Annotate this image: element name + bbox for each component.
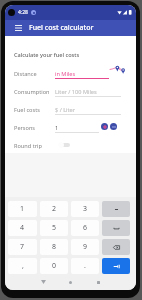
button[interactable]: 8 <box>40 239 68 255</box>
staticText: 1 <box>55 124 59 131</box>
staticText: Fuel cost calculator <box>29 23 94 33</box>
button[interactable]: Recent apps <box>91 275 105 289</box>
button[interactable]: Add person <box>101 123 108 130</box>
staticText: 3 <box>83 204 88 214</box>
button[interactable]: 5 <box>40 220 68 236</box>
staticText: 0 <box>52 261 57 271</box>
button[interactable]: Choose route on map <box>110 65 126 72</box>
staticText: 1 <box>20 204 25 214</box>
staticText: Fuel costs <box>14 106 55 113</box>
button[interactable]: 9 <box>71 239 99 255</box>
staticText: 4:28 <box>18 9 28 16</box>
staticText: 4 <box>20 223 25 233</box>
staticText: 8 <box>52 242 57 252</box>
staticText: in Miles <box>55 70 76 77</box>
staticText: 9 <box>83 242 88 252</box>
staticText: 7 <box>20 242 25 252</box>
staticText: Consumption <box>14 88 55 95</box>
button[interactable]: 3 <box>71 201 99 217</box>
staticText: Calculate your fuel costs <box>14 51 80 59</box>
button[interactable]: . <box>71 258 99 274</box>
button[interactable]: Back <box>36 275 50 289</box>
button[interactable]: Open navigation menu <box>12 22 24 34</box>
button[interactable]: 6 <box>71 220 99 236</box>
button[interactable]: Round trip toggle <box>58 141 72 149</box>
staticText: 6 <box>83 223 88 233</box>
button[interactable]: Backspace <box>102 239 130 255</box>
staticText: 2 <box>52 204 57 214</box>
staticText: $ / Liter <box>55 106 76 113</box>
staticText: Persons <box>14 124 55 131</box>
button[interactable]: Space <box>102 220 130 236</box>
staticText: . <box>84 261 86 271</box>
button[interactable]: Remove person <box>110 123 117 130</box>
button[interactable]: 1 <box>8 201 37 217</box>
button[interactable]: 4 <box>8 220 37 236</box>
button[interactable]: 0 <box>40 258 68 274</box>
button[interactable]: 7 <box>8 239 37 255</box>
staticText: Distance <box>14 70 55 77</box>
staticText: 5 <box>52 223 57 233</box>
button[interactable]: Home <box>63 275 77 289</box>
staticText: Liter / 100 Miles <box>55 88 97 95</box>
staticText: , <box>22 261 24 271</box>
button[interactable]: , <box>8 258 37 274</box>
button[interactable]: Minus <box>102 201 130 217</box>
button[interactable]: 2 <box>40 201 68 217</box>
staticText: Round trip <box>14 142 55 150</box>
button[interactable]: Next field <box>102 258 130 274</box>
